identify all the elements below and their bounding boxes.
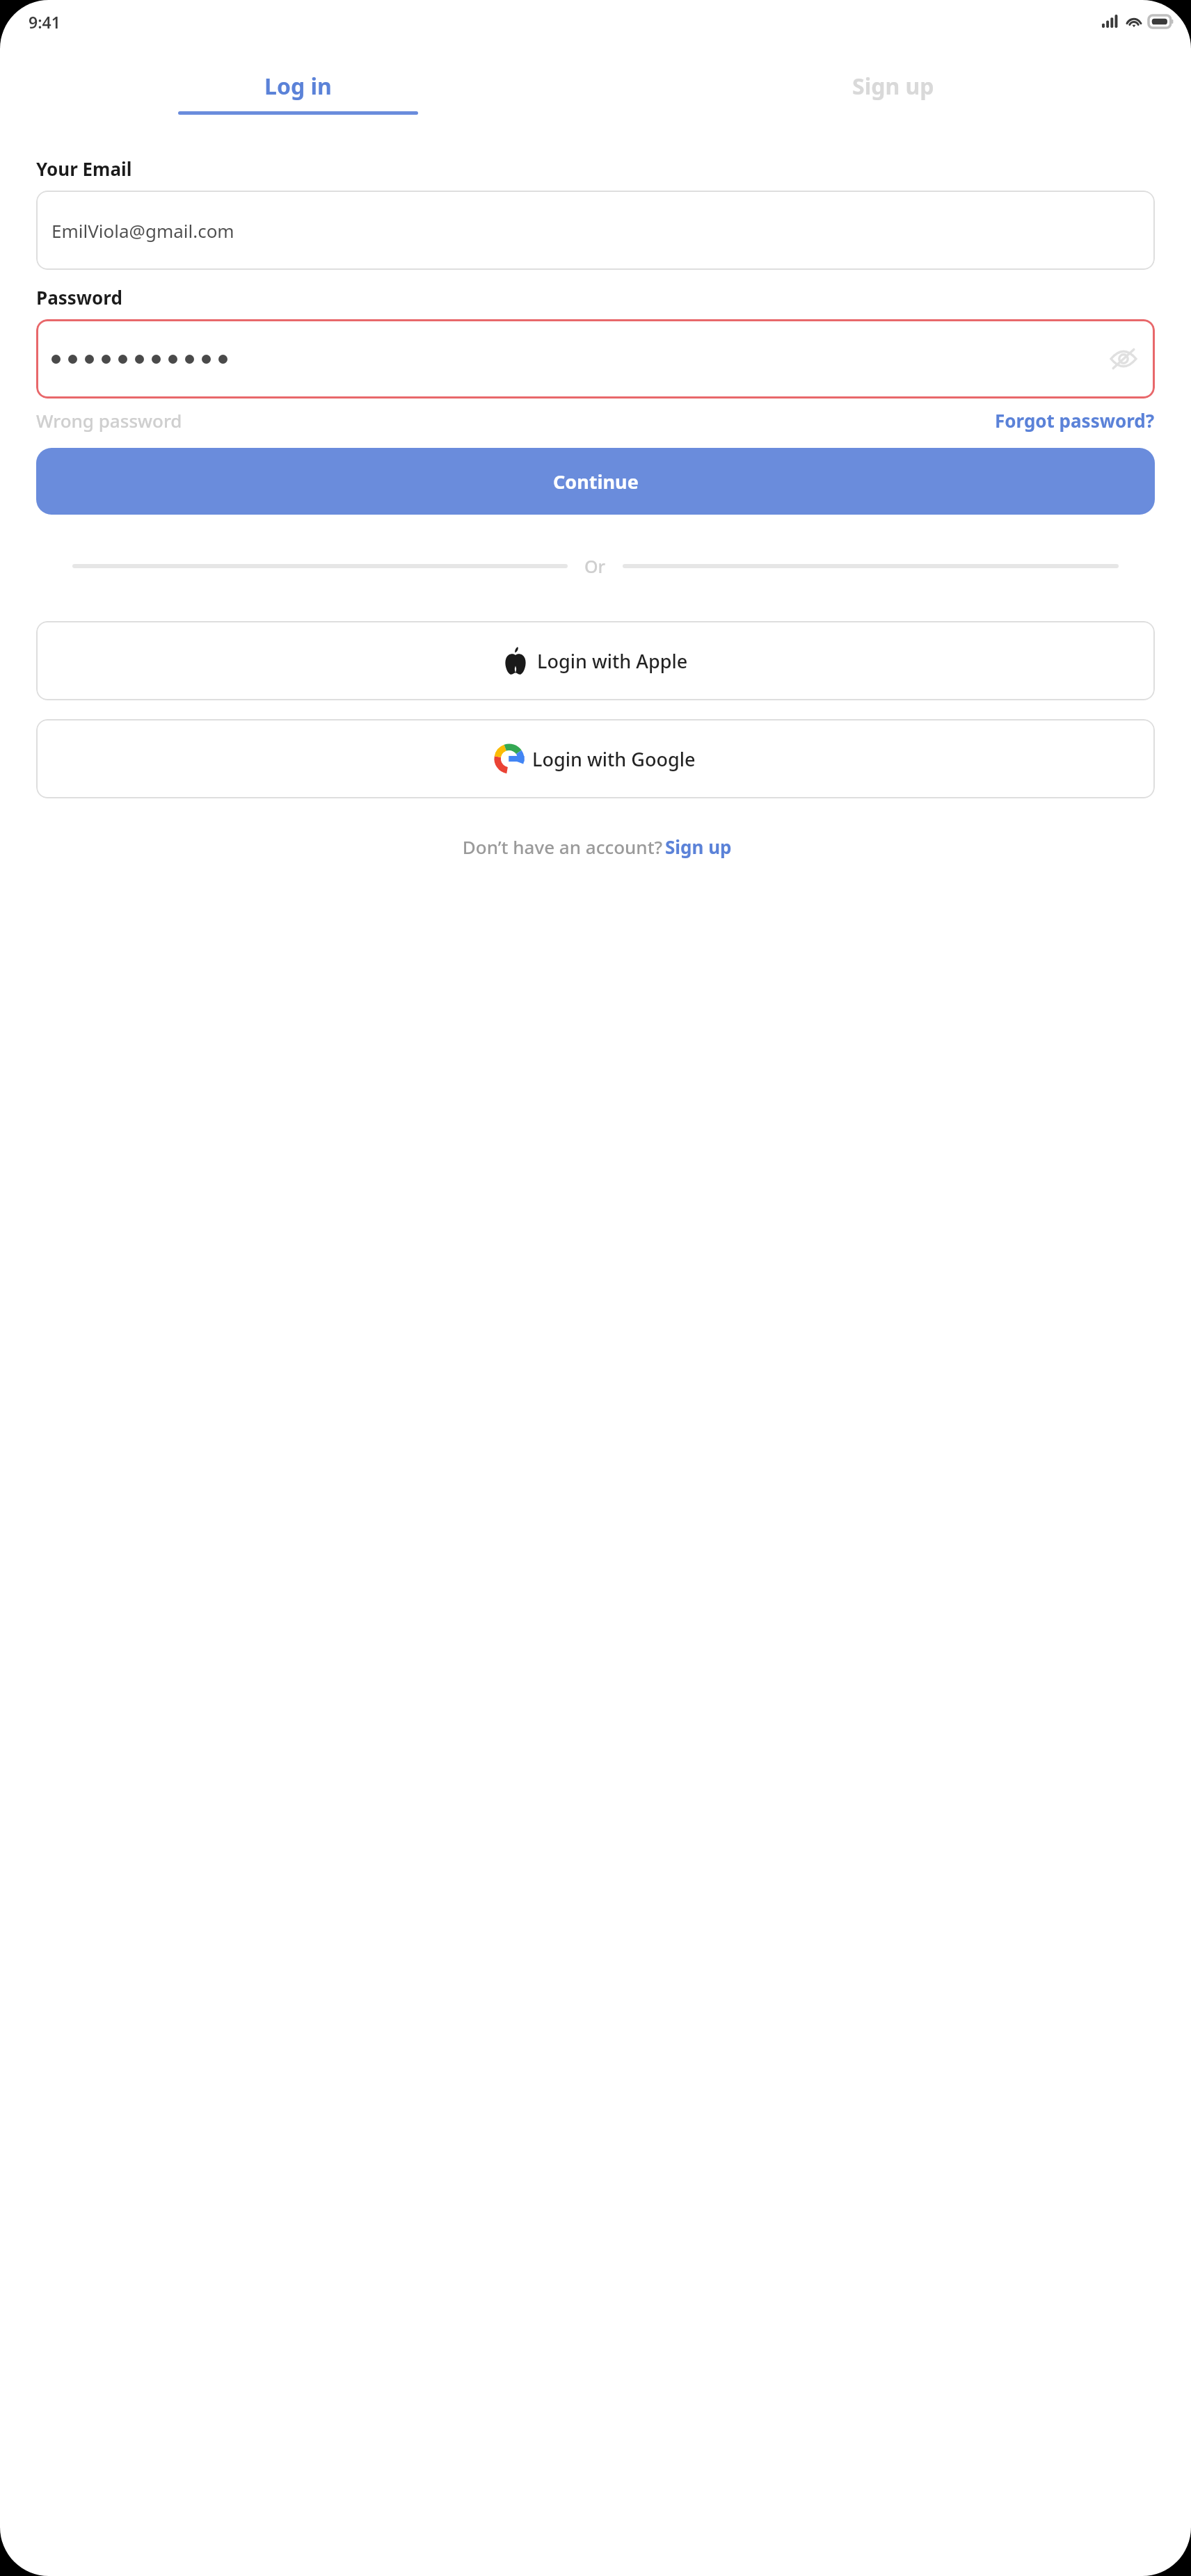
staticText: Login with Apple bbox=[537, 648, 688, 674]
staticText: Password bbox=[36, 285, 122, 309]
button[interactable]: Login with Google bbox=[36, 719, 1155, 798]
staticText: Your Email bbox=[36, 156, 132, 181]
staticText: Continue bbox=[553, 469, 639, 494]
staticText: Login with Google bbox=[532, 746, 696, 772]
button[interactable]: Sign up bbox=[595, 71, 1191, 102]
staticText: Sign up bbox=[852, 71, 934, 102]
staticText: Forgot password? bbox=[995, 408, 1155, 433]
staticText: Or bbox=[584, 554, 606, 578]
button[interactable]: EmilViola@gmail.com bbox=[36, 191, 1155, 270]
button[interactable]: Sign up bbox=[665, 835, 732, 859]
button[interactable]: Show password bbox=[1108, 343, 1140, 375]
button[interactable]: Log in bbox=[0, 71, 595, 102]
staticText: 9:41 bbox=[29, 11, 61, 33]
button[interactable]: Continue bbox=[36, 448, 1155, 515]
staticText: Sign up bbox=[665, 835, 732, 859]
button[interactable]: Login with Apple bbox=[36, 621, 1155, 700]
staticText: Don’t have an account? bbox=[460, 835, 665, 859]
staticText: Wrong password bbox=[36, 408, 182, 433]
button[interactable]: Show password bbox=[36, 319, 1155, 399]
button[interactable]: Forgot password? bbox=[995, 408, 1155, 433]
staticText: Log in bbox=[264, 71, 332, 102]
staticText: EmilViola@gmail.com bbox=[51, 218, 234, 243]
